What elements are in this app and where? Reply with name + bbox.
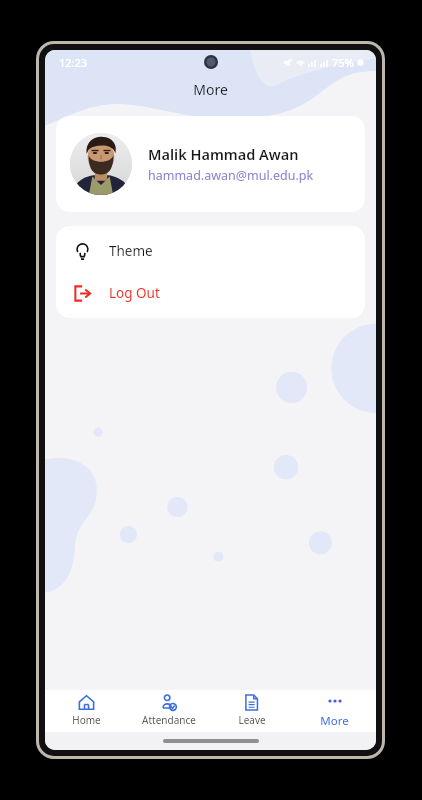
staticText: 75% bbox=[332, 55, 354, 70]
other: Home bbox=[78, 694, 95, 711]
staticText: Malik Hammad Awan bbox=[148, 144, 299, 164]
other: More bbox=[328, 694, 342, 708]
button[interactable]: Log Out bbox=[56, 272, 365, 314]
other: Leave bbox=[243, 694, 260, 711]
other: Attendance bbox=[160, 694, 177, 711]
staticText: hammad.awan@mul.edu.pk bbox=[148, 167, 314, 184]
button[interactable]: Attendance bbox=[127, 690, 210, 732]
button[interactable]: Leave bbox=[210, 690, 293, 732]
staticText: Attendance bbox=[142, 713, 196, 727]
staticText: Log Out bbox=[109, 284, 160, 302]
staticText: Leave bbox=[238, 713, 266, 727]
button[interactable]: Malik Hammad Awan bbox=[56, 116, 365, 212]
staticText: Theme bbox=[109, 242, 153, 260]
staticText: More bbox=[320, 713, 349, 729]
button[interactable]: Theme bbox=[56, 230, 365, 272]
staticText: 12:23 bbox=[59, 55, 88, 70]
button[interactable]: More bbox=[293, 690, 376, 732]
button[interactable]: Home bbox=[45, 690, 127, 732]
staticText: Home bbox=[72, 713, 101, 727]
staticText: More bbox=[193, 80, 228, 99]
